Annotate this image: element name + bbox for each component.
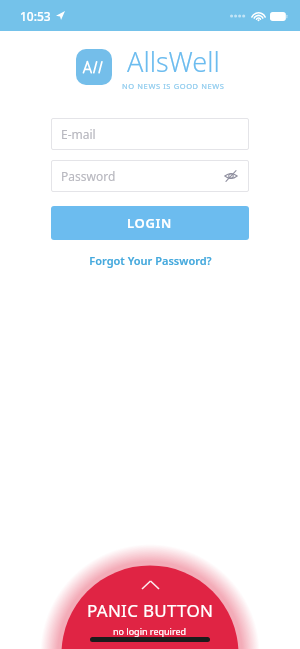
button[interactable]: Password (51, 160, 249, 192)
staticText: no login required (113, 625, 187, 637)
button[interactable]: Forgot Your Password? (51, 253, 249, 268)
staticText: 10:53 (20, 8, 51, 24)
staticText: Forgot Your Password? (89, 253, 212, 268)
staticText: PANIC BUTTON (87, 599, 214, 622)
button[interactable]: LOGIN (51, 206, 249, 240)
staticText: AllsWell (127, 43, 220, 80)
button[interactable]: PANIC BUTTON (0, 554, 300, 649)
staticText: Password (61, 168, 116, 184)
staticText: NO NEWS IS GOOD NEWS (122, 81, 225, 91)
staticText: LOGIN (127, 214, 173, 232)
button[interactable]: E-mail (51, 118, 249, 150)
other: Show password (224, 169, 238, 183)
staticText: E-mail (61, 126, 96, 142)
